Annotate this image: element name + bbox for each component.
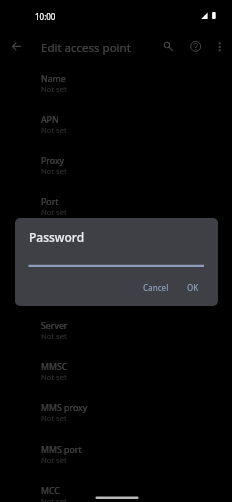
staticText: MMS port: [41, 444, 82, 456]
button[interactable]: MMS proxy: [0, 400, 232, 441]
button[interactable]: APN: [0, 112, 232, 153]
button[interactable]: Password: [0, 277, 232, 318]
button[interactable]: MCC: [0, 483, 232, 502]
staticText: Password: [29, 229, 85, 245]
staticText: Proxy: [41, 155, 65, 167]
button[interactable]: Help: [181, 32, 210, 61]
button[interactable]: MMSC: [0, 359, 232, 400]
staticText: MMSC: [41, 361, 68, 373]
staticText: Not set: [41, 125, 67, 135]
staticText: Name: [41, 73, 66, 85]
button[interactable]: OK: [183, 278, 203, 297]
button[interactable]: Navigate up: [2, 32, 31, 61]
staticText: Not set: [41, 372, 67, 382]
staticText: Port: [41, 196, 59, 208]
staticText: APN: [41, 114, 59, 126]
button[interactable]: More options: [206, 32, 232, 59]
button[interactable]: Search: [153, 32, 182, 61]
button[interactable]: Name: [0, 71, 232, 112]
staticText: Not set: [41, 496, 67, 502]
staticText: Edit access point: [41, 40, 131, 56]
staticText: Not set: [41, 84, 67, 94]
staticText: OK: [187, 282, 199, 293]
button[interactable]: Proxy: [0, 153, 232, 194]
staticText: Server: [41, 320, 68, 332]
button[interactable]: Port: [0, 194, 232, 235]
staticText: MMS proxy: [41, 402, 88, 414]
button[interactable]: Cancel: [139, 278, 173, 297]
staticText: Username: [41, 238, 84, 250]
button[interactable]: Username: [0, 236, 232, 277]
staticText: Not set: [41, 413, 67, 423]
staticText: MCC: [41, 485, 60, 497]
staticText: Cancel: [143, 282, 169, 293]
staticText: 10:00: [35, 11, 56, 22]
staticText: Not set: [41, 455, 67, 465]
button[interactable]: MMS port: [0, 442, 232, 483]
button[interactable]: Server: [0, 318, 232, 359]
staticText: Not set: [41, 207, 67, 217]
staticText: Not set: [41, 166, 67, 176]
staticText: Not set: [41, 331, 67, 341]
